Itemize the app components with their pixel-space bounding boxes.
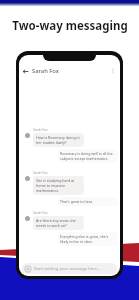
button[interactable]: That's great to hear. bbox=[60, 199, 116, 204]
staticText: How is Rosemary doing in her studies lat… bbox=[36, 135, 81, 145]
other: Add attachment bbox=[24, 265, 32, 273]
button[interactable]: Everything else is great, she's likely t… bbox=[60, 234, 116, 244]
staticText: Sarah Fox bbox=[33, 171, 48, 175]
staticText: That's great to hear. bbox=[60, 199, 116, 204]
button[interactable]: Back bbox=[22, 68, 29, 75]
button[interactable]: More options bbox=[109, 67, 117, 75]
staticText: Are there any areas she needs to work on… bbox=[36, 218, 81, 228]
staticText: She is studying hard at home to improve … bbox=[36, 178, 81, 193]
staticText: Rosemary is doing well in all the subjec… bbox=[60, 151, 116, 161]
button[interactable]: How is Rosemary doing in her studies lat… bbox=[36, 135, 81, 145]
staticText: Sarah Fox bbox=[32, 67, 59, 75]
staticText: Sarah Fox bbox=[33, 211, 48, 215]
button[interactable]: Rosemary is doing well in all the subjec… bbox=[60, 151, 116, 161]
button[interactable]: Are there any areas she needs to work on… bbox=[36, 218, 81, 228]
staticText: Start writing your message here... bbox=[34, 266, 101, 272]
button[interactable]: She is studying hard at home to improve … bbox=[36, 178, 81, 193]
staticText: Sarah Fox bbox=[33, 128, 48, 132]
button[interactable]: Add attachment bbox=[22, 263, 117, 274]
staticText: Two-way messaging bbox=[12, 18, 128, 34]
staticText: Everything else is great, she's likely t… bbox=[60, 234, 116, 244]
button[interactable]: Back bbox=[19, 64, 120, 78]
